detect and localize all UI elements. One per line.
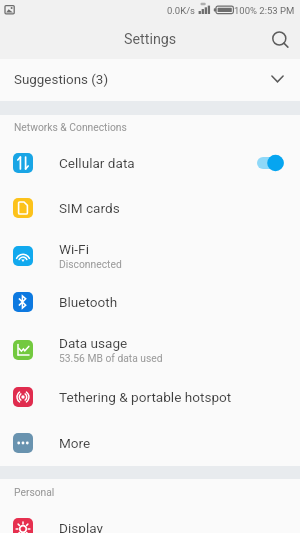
staticText: SIM cards [59, 200, 120, 216]
staticText: Settings [124, 31, 177, 48]
staticText: Suggestions (3) [14, 72, 109, 88]
button[interactable]: Bluetooth [0, 279, 300, 324]
staticText: Cellular data [59, 155, 135, 171]
staticText: Disconnected [59, 258, 122, 270]
staticText: 100% 2:53 PM [234, 5, 295, 16]
staticText: 53.56 MB of data used [59, 352, 163, 364]
staticText: Data usage [59, 335, 128, 351]
staticText: Personal [14, 486, 55, 498]
button[interactable]: Search [260, 22, 300, 59]
button[interactable]: Wi-Fi [0, 231, 300, 280]
button[interactable]: Suggestions (3) [0, 59, 300, 101]
staticText: Tethering & portable hotspot [59, 389, 232, 405]
button[interactable]: Data usage [0, 325, 300, 374]
staticText: 0.0K/s [167, 5, 195, 16]
button[interactable]: More [0, 420, 300, 465]
staticText: Display [59, 520, 103, 533]
button[interactable]: SIM cards [0, 185, 300, 230]
button[interactable]: Display [0, 505, 300, 533]
staticText: Networks & Connections [14, 121, 127, 133]
staticText: Wi-Fi [59, 241, 89, 257]
button[interactable]: Cellular data [0, 140, 300, 185]
staticText: More [59, 435, 91, 451]
staticText: Bluetooth [59, 294, 118, 310]
button[interactable]: Tethering & portable hotspot [0, 374, 300, 419]
